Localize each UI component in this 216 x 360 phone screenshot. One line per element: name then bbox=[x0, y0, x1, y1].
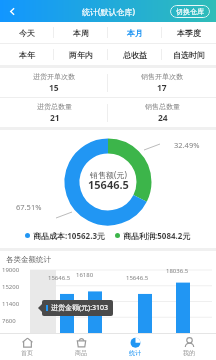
staticText: 17 bbox=[157, 82, 167, 94]
button[interactable]: 两年内 bbox=[54, 44, 108, 65]
staticText: 32.49% bbox=[174, 140, 200, 150]
staticText: 15 bbox=[49, 82, 59, 94]
staticText: 商品利润:5084.2元 bbox=[123, 230, 191, 241]
button[interactable]: 统计 bbox=[108, 333, 162, 360]
staticText: 商品 bbox=[75, 349, 87, 357]
button[interactable]: 销售开单次数 bbox=[108, 68, 216, 97]
button[interactable]: 切换仓库 bbox=[170, 5, 210, 18]
button[interactable]: 进货总数量 bbox=[0, 98, 108, 127]
button[interactable]: 本周 bbox=[54, 22, 108, 43]
staticText: 7600 bbox=[2, 317, 16, 325]
staticText: 商品成本:10562.3元 bbox=[33, 230, 105, 241]
button[interactable]: 总收益 bbox=[108, 44, 162, 65]
button[interactable]: 本年 bbox=[0, 44, 54, 65]
staticText: 67.51% bbox=[16, 202, 42, 212]
button[interactable]: 本季度 bbox=[162, 22, 216, 43]
button[interactable]: Back bbox=[3, 2, 21, 20]
staticText: 首页 bbox=[21, 349, 33, 357]
staticText: 进货总数量 bbox=[37, 102, 72, 111]
staticText: 总收益 bbox=[123, 50, 147, 60]
staticText: 24 bbox=[158, 112, 168, 124]
staticText: 15200 bbox=[2, 283, 20, 291]
button[interactable]: 进货开单次数 bbox=[0, 68, 108, 97]
staticText: 15646.5 bbox=[48, 274, 71, 282]
staticText: 15646.5 bbox=[126, 274, 149, 282]
staticText: 各类金额统计 bbox=[6, 255, 51, 264]
staticText: 本周 bbox=[73, 28, 89, 38]
staticText: 18036.5 bbox=[166, 267, 189, 275]
staticText: 自选时间 bbox=[173, 50, 205, 60]
staticText: 16180 bbox=[76, 271, 94, 279]
staticText: 统计(默认仓库) bbox=[82, 6, 135, 17]
staticText: 销售额(元) bbox=[90, 169, 127, 180]
staticText: 今天 bbox=[19, 28, 35, 38]
staticText: 本季度 bbox=[177, 28, 201, 38]
button[interactable]: 销售总数量 bbox=[108, 98, 216, 127]
staticText: 本年 bbox=[19, 50, 35, 60]
staticText: 进货开单次数 bbox=[33, 72, 75, 81]
staticText: 销售开单次数 bbox=[141, 72, 183, 81]
button[interactable]: 首页 bbox=[0, 333, 54, 360]
button[interactable]: 自选时间 bbox=[162, 44, 216, 65]
staticText: 21 bbox=[50, 112, 60, 124]
button[interactable]: 商品 bbox=[54, 333, 108, 360]
staticText: 15646.5 bbox=[88, 177, 129, 192]
staticText: 本月 bbox=[127, 28, 143, 38]
staticText: 11400 bbox=[2, 300, 20, 308]
button[interactable]: 我的 bbox=[162, 333, 216, 360]
staticText: 我的 bbox=[183, 349, 195, 357]
staticText: 统计 bbox=[129, 349, 141, 357]
staticText: 销售总数量 bbox=[145, 102, 180, 111]
staticText: 进货金额(元):3103 bbox=[51, 303, 109, 313]
button[interactable]: 今天 bbox=[0, 22, 54, 43]
staticText: 19000 bbox=[2, 266, 20, 274]
button[interactable]: 本月 bbox=[108, 22, 162, 43]
staticText: 切换仓库 bbox=[176, 7, 204, 16]
staticText: 两年内 bbox=[69, 50, 93, 60]
